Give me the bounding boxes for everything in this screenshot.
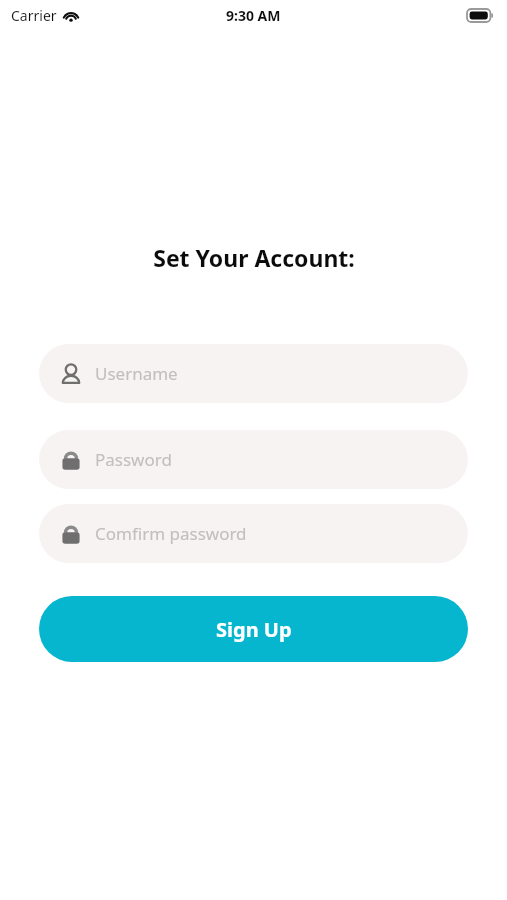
- staticText: Sign Up: [216, 616, 292, 643]
- button[interactable]: Sign Up: [39, 596, 468, 662]
- staticText: 9:30 AM: [226, 6, 281, 25]
- button[interactable]: Username: [39, 344, 468, 403]
- staticText: Set Your Account:: [153, 242, 355, 273]
- button[interactable]: Comfirm password: [39, 504, 468, 563]
- staticText: Username: [95, 362, 178, 385]
- staticText: Carrier: [11, 6, 57, 25]
- staticText: Password: [95, 448, 172, 471]
- staticText: Comfirm password: [95, 522, 247, 545]
- button[interactable]: Password: [39, 430, 468, 489]
